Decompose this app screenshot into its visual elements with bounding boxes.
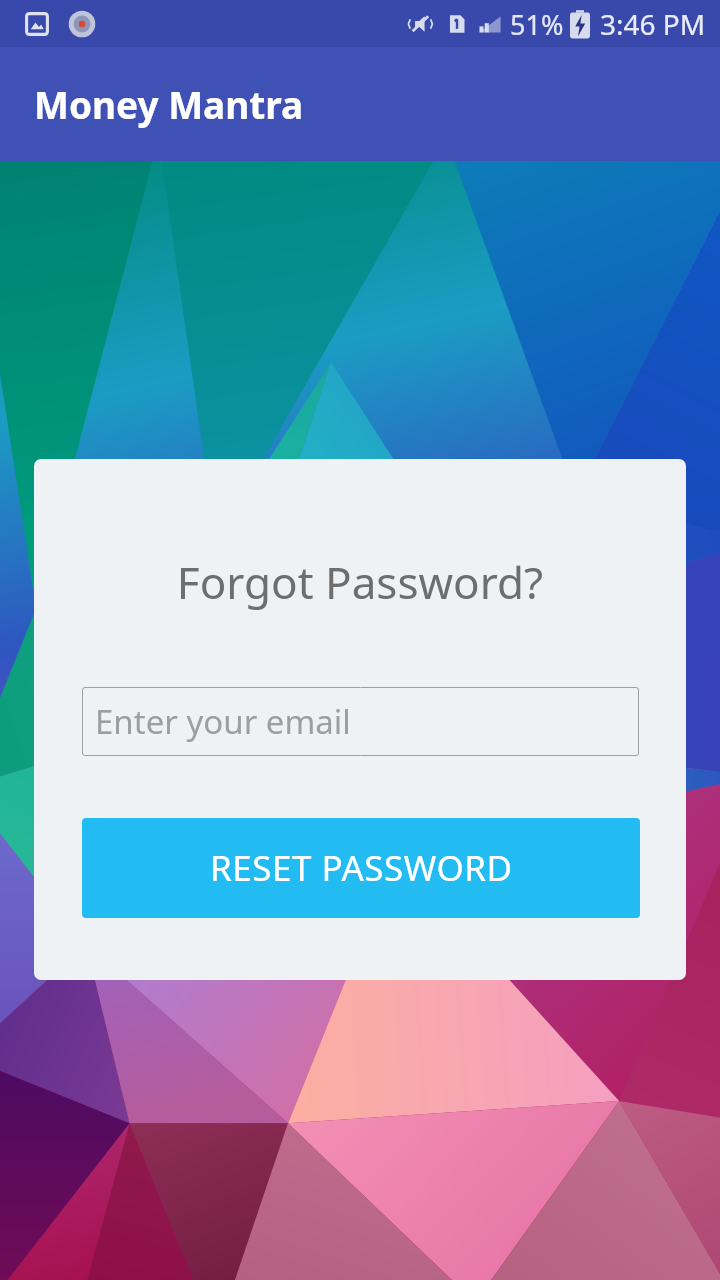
staticText: Forgot Password?: [34, 552, 686, 612]
button[interactable]: Enter your email: [82, 687, 639, 756]
staticText: 3:46 PM: [600, 5, 706, 43]
button[interactable]: RESET PASSWORD: [82, 818, 640, 918]
staticText: Money Mantra: [34, 79, 304, 129]
staticText: Enter your email: [95, 699, 351, 744]
staticText: 51%: [510, 6, 564, 43]
staticText: RESET PASSWORD: [210, 844, 513, 892]
